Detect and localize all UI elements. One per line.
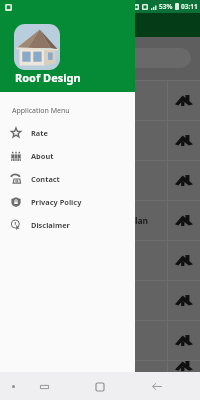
button[interactable]: About (0, 144, 135, 167)
staticText: Modern Roof House Design-Plan (12, 215, 149, 227)
button[interactable]: Hide keyboard (1, 375, 25, 398)
staticText: Application Menu (12, 106, 70, 116)
button[interactable]: Privacy Policy (0, 190, 135, 213)
button[interactable]: Roof Design (0, 81, 200, 120)
button[interactable]: Home Roof (0, 281, 200, 320)
staticText: 03:11 (181, 2, 198, 11)
button[interactable]: Roof Tiles (0, 241, 200, 280)
button[interactable]: Disclaimer (0, 213, 135, 236)
staticText: 53% (159, 2, 173, 11)
staticText: Privacy Policy (31, 197, 82, 207)
staticText: Simple Roof (12, 175, 63, 187)
button[interactable]: Modern Roof House Design-Plan (0, 201, 200, 240)
button[interactable]: Recent apps (32, 375, 56, 398)
button[interactable]: Home (88, 375, 112, 398)
staticText: Rate (31, 128, 48, 138)
staticText: Roof Design (15, 70, 81, 85)
staticText: Contact (31, 174, 60, 184)
staticText: Disclaimer (31, 220, 70, 230)
button[interactable]: Rate (0, 121, 135, 144)
button[interactable]: Back (145, 375, 169, 398)
button[interactable]: Simple Roof (0, 161, 200, 200)
staticText: About (31, 151, 54, 161)
button[interactable]: Shed Roof (0, 361, 200, 372)
button[interactable]: Contact (0, 167, 135, 190)
button[interactable]: Wood Roof (0, 321, 200, 360)
staticText: Modern Roof (12, 135, 67, 147)
button[interactable]: Modern Roof (0, 121, 200, 160)
